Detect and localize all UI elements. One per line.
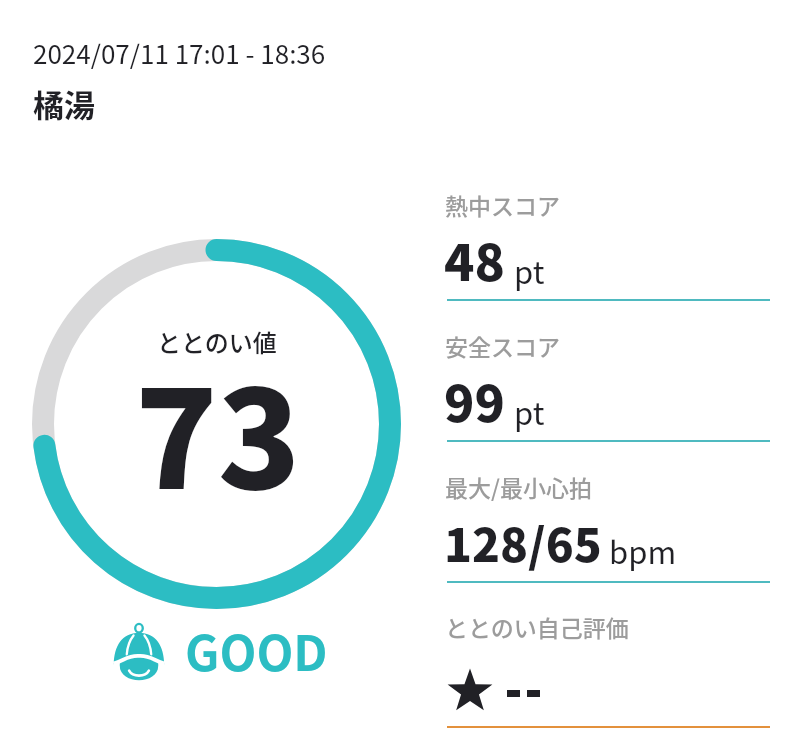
staticText: 橘湯	[33, 81, 95, 126]
button[interactable]: ととのい自己評価 ★ --	[440, 602, 777, 735]
button[interactable]: 安全スコア 99 pt	[440, 321, 777, 449]
staticText: pt	[514, 248, 545, 293]
button[interactable]: 熱中スコア 48 pt	[440, 180, 777, 308]
staticText: 最大/最小心拍	[445, 470, 592, 503]
staticText: 99	[444, 364, 505, 436]
staticText: GOOD	[185, 615, 328, 685]
staticText: 73	[135, 331, 301, 528]
button[interactable]: Totonoi score 73 of 100	[32, 239, 401, 609]
button[interactable]: Sauna hat mascot	[111, 613, 330, 687]
staticText: 48	[444, 223, 505, 295]
staticText: 128/65	[444, 509, 602, 576]
other: Sauna hat mascot	[113, 621, 165, 685]
button[interactable]: 最大/最小心拍 128/65 bpm	[440, 462, 777, 590]
staticText: ととのい値	[157, 324, 277, 359]
staticText: ととのい自己評価	[445, 610, 629, 643]
staticText: 安全スコア	[445, 329, 560, 362]
staticText: bpm	[609, 528, 677, 573]
staticText: pt	[514, 389, 545, 434]
staticText: 熱中スコア	[445, 188, 560, 221]
staticText: 2024/07/11 17:01 - 18:36	[33, 34, 326, 72]
